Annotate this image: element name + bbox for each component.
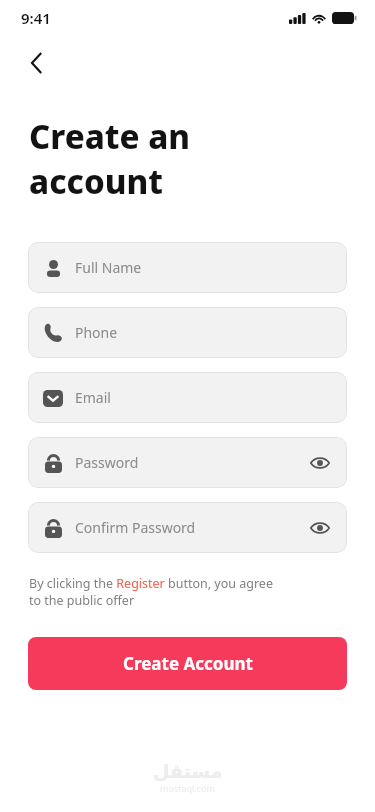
staticText: Full Name — [75, 258, 142, 277]
staticText: Email — [75, 388, 111, 407]
button[interactable]: Email — [28, 372, 347, 423]
button[interactable]: Full Name — [28, 242, 347, 293]
staticText: mostaql.com — [160, 782, 215, 794]
staticText: Phone — [75, 323, 118, 342]
staticText: Create an account — [29, 114, 191, 203]
staticText: مستقل — [153, 760, 223, 782]
button[interactable]: Create Account — [28, 637, 347, 690]
staticText: By clicking the Register button, you agr… — [29, 575, 273, 609]
staticText: Confirm Password — [75, 518, 196, 537]
button[interactable]: Back — [18, 44, 56, 82]
staticText: Password — [75, 453, 139, 472]
button[interactable]: Toggle password visibility — [307, 450, 333, 476]
button[interactable]: Password — [28, 437, 347, 488]
staticText: 9:41 — [21, 8, 51, 28]
button[interactable]: Toggle password visibility — [307, 515, 333, 541]
button[interactable]: Phone — [28, 307, 347, 358]
staticText: Create Account — [123, 652, 253, 675]
button[interactable]: Confirm Password — [28, 502, 347, 553]
